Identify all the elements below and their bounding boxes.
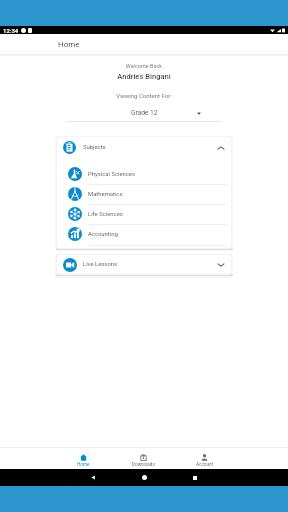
staticText: Welcome Back: [0, 63, 288, 69]
other: Expand: [218, 263, 224, 267]
staticText: Accounting: [88, 231, 118, 238]
button[interactable]: Home: [142, 475, 147, 480]
button[interactable]: Account: [174, 451, 235, 470]
button[interactable]: Life Sciences: [57, 204, 231, 224]
staticText: Live Lessons: [83, 261, 118, 268]
staticText: 12:34: [3, 27, 19, 34]
staticText: Account: [196, 462, 213, 467]
button[interactable]: Physical Sciences: [57, 164, 231, 184]
staticText: Viewing Content For:: [0, 92, 288, 99]
staticText: Andries Bingani: [0, 72, 288, 81]
button[interactable]: Subjects: [57, 137, 231, 158]
button[interactable]: Home: [53, 451, 113, 470]
staticText: Downloads: [132, 462, 155, 467]
staticText: Life Sciences: [88, 211, 123, 218]
button[interactable]: Home: [0, 34, 288, 54]
other: Select grade: [197, 111, 201, 115]
other: Collapse: [218, 146, 224, 150]
button[interactable]: Live Lessons: [57, 255, 231, 274]
button[interactable]: Mathematics: [57, 184, 231, 204]
staticText: Home: [58, 40, 80, 49]
button[interactable]: Downloads: [113, 451, 174, 470]
button[interactable]: Grade 12: [66, 106, 222, 119]
staticText: Subjects: [83, 144, 106, 151]
button[interactable]: Accounting: [57, 224, 231, 244]
staticText: Home: [77, 462, 90, 467]
staticText: Physical Sciences: [88, 171, 136, 178]
staticText: Mathematics: [88, 191, 123, 198]
staticText: Grade 12: [131, 109, 158, 117]
button[interactable]: Back: [91, 475, 96, 480]
